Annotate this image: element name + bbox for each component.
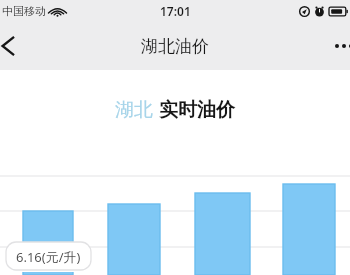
button[interactable]: More options — [320, 24, 350, 68]
button[interactable]: 6.16(元/升) — [6, 242, 91, 272]
button[interactable]: Back — [0, 24, 34, 68]
staticText: 实时油价 — [159, 98, 235, 122]
staticText: 湖北 — [115, 98, 153, 122]
staticText: 湖北油价 — [141, 36, 209, 57]
staticText: 6.16(元/升) — [16, 248, 81, 266]
staticText: 中国移动 — [2, 4, 46, 18]
staticText: 17:01 — [160, 3, 191, 19]
